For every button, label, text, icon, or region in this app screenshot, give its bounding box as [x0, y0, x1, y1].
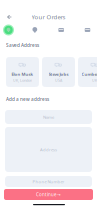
staticText: Your Orders — [31, 13, 65, 21]
staticText: UK — [92, 78, 97, 83]
button[interactable]: Name — [5, 110, 92, 124]
button[interactable]: Checkout step — [81, 24, 94, 35]
staticText: Saved Address — [6, 42, 39, 48]
button[interactable]: Checkout step — [2, 24, 15, 35]
staticText: Continue → — [36, 191, 61, 197]
button[interactable]: Phone Number — [5, 176, 92, 187]
staticText: Address — [40, 147, 57, 152]
button[interactable]: Elon Musk — [6, 57, 39, 87]
staticText: Steve Jobs — [48, 71, 68, 77]
button[interactable]: Checkout step — [28, 24, 41, 35]
button[interactable]: Back — [2, 12, 16, 22]
staticText: Phone Number — [32, 179, 64, 184]
staticText: Name — [43, 114, 54, 120]
button[interactable]: Steve Jobs — [42, 57, 75, 87]
button[interactable]: Continue → — [4, 189, 93, 200]
staticText: USA — [55, 78, 62, 83]
staticText: Add a new address — [6, 96, 49, 102]
staticText: UK, London — [13, 78, 32, 83]
button[interactable]: Cumberland — [78, 57, 97, 87]
button[interactable]: Checkout step — [55, 24, 68, 35]
staticText: Elon Musk — [11, 71, 33, 77]
staticText: Cumberland — [81, 71, 97, 77]
